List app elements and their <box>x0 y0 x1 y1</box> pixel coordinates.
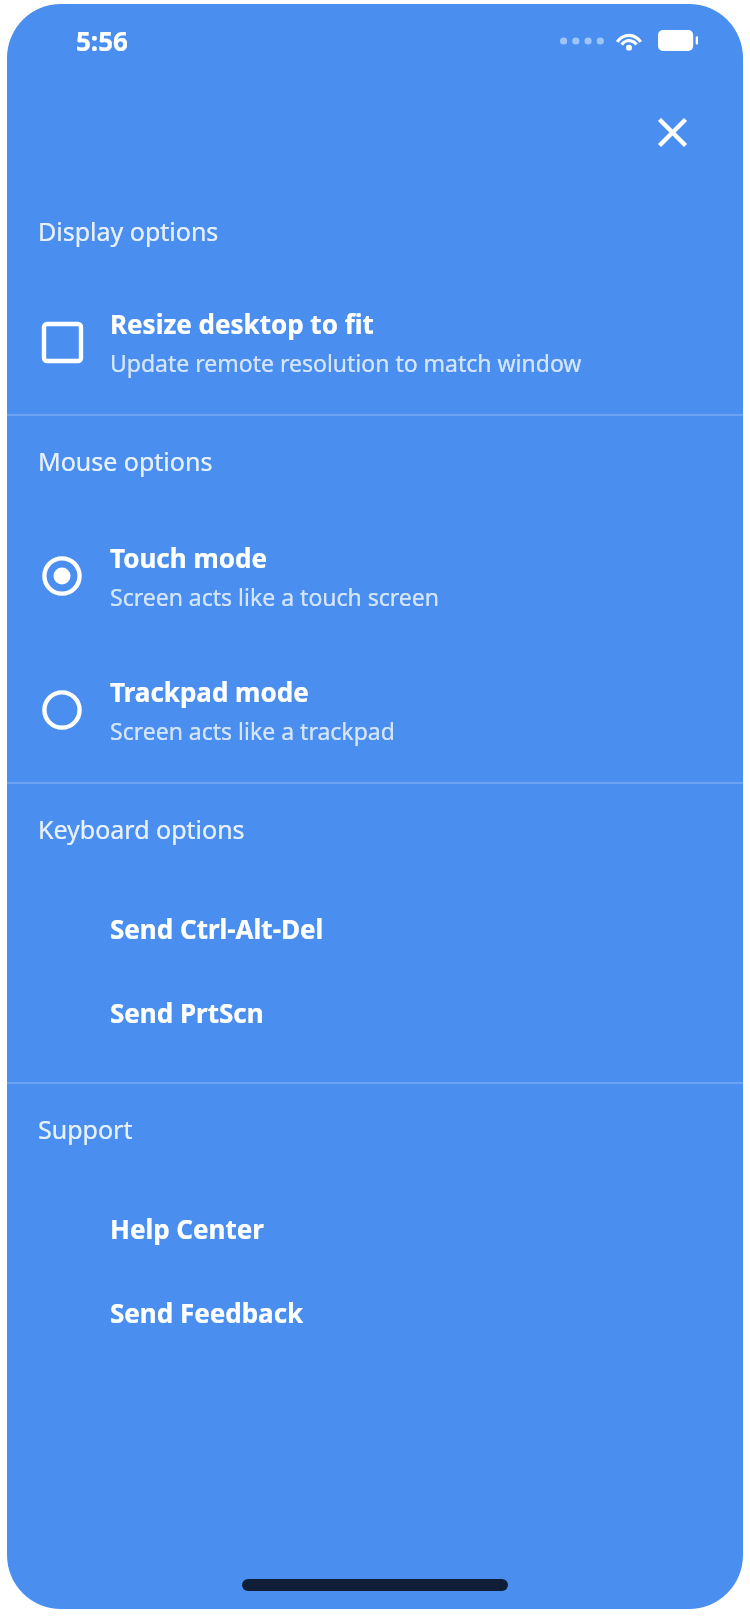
staticText: Mouse options <box>38 444 213 478</box>
staticText: Trackpad mode <box>110 674 309 709</box>
button[interactable]: Help Center <box>7 1186 743 1270</box>
staticText: Help Center <box>110 1211 264 1246</box>
staticText: Display options <box>38 214 219 248</box>
staticText: Send PrtScn <box>110 995 264 1030</box>
staticText: Keyboard options <box>38 812 245 846</box>
staticText: Screen acts like a trackpad <box>110 715 395 746</box>
staticText: Touch mode <box>110 540 267 575</box>
staticText: Screen acts like a touch screen <box>110 581 439 612</box>
staticText: Resize desktop to fit <box>110 306 374 341</box>
button[interactable]: Send Feedback <box>7 1270 743 1354</box>
staticText: Support <box>38 1112 133 1146</box>
button[interactable]: Send PrtScn <box>7 970 743 1054</box>
staticText: Update remote resolution to match window <box>110 347 582 378</box>
button[interactable]: Resize desktop to fit <box>7 296 743 388</box>
button[interactable]: Send Ctrl-Alt-Del <box>7 886 743 970</box>
staticText: Send Ctrl-Alt-Del <box>110 911 324 946</box>
staticText: Send Feedback <box>110 1295 304 1330</box>
staticText: 5:56 <box>76 23 128 58</box>
button[interactable]: Trackpad mode <box>7 664 743 756</box>
button[interactable]: Close <box>639 99 705 165</box>
button[interactable]: Touch mode <box>7 530 743 622</box>
